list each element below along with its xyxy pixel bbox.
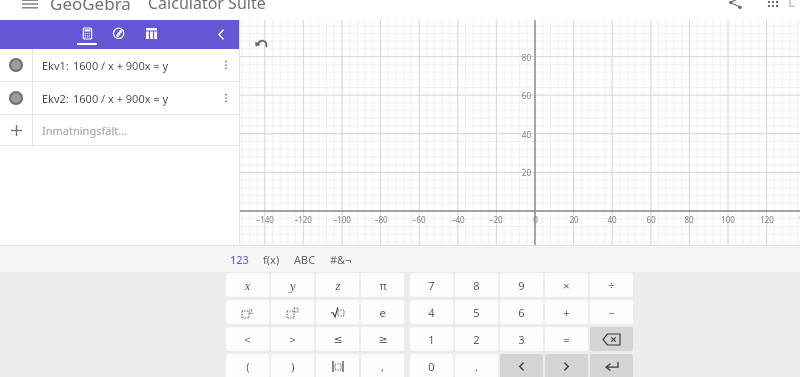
staticText: ≥ <box>378 333 388 346</box>
staticText: 6 <box>518 305 525 320</box>
button[interactable]: 1 <box>410 327 453 351</box>
button[interactable]: ÷ <box>590 273 633 297</box>
button[interactable]: ≥ <box>361 327 404 351</box>
button[interactable]: 9 <box>500 273 543 297</box>
button[interactable]: 7 <box>410 273 453 297</box>
staticText: 3 <box>518 332 525 347</box>
button[interactable]: #&¬ <box>330 246 352 272</box>
button[interactable]: Square <box>226 300 269 324</box>
button[interactable]: . <box>455 354 498 377</box>
staticText: ( <box>246 359 250 374</box>
button[interactable]: × <box>545 273 588 297</box>
button[interactable]: z <box>316 273 359 297</box>
button[interactable]: Menu <box>16 0 44 14</box>
button[interactable]: 5 <box>455 300 498 324</box>
staticText: − <box>608 305 615 320</box>
staticText: 4 <box>428 305 435 320</box>
staticText: 1 <box>428 332 435 347</box>
button[interactable]: Enter <box>590 354 633 377</box>
staticText: 140 <box>798 214 800 225</box>
staticText: #&¬ <box>330 252 352 267</box>
staticText: Inmatningsfält... <box>42 123 128 138</box>
button[interactable]: Apps <box>760 0 786 12</box>
button[interactable]: Tools <box>106 20 132 48</box>
button[interactable]: 0 <box>410 354 453 377</box>
button[interactable]: 2 <box>455 327 498 351</box>
button[interactable]: < <box>226 327 269 351</box>
button[interactable]: More options <box>216 49 236 81</box>
button[interactable]: Undo <box>250 32 272 54</box>
button[interactable]: ≤ <box>316 327 359 351</box>
staticText: 8 <box>473 278 480 293</box>
button[interactable]: f(x) <box>263 246 280 272</box>
button[interactable]: 123 <box>230 246 249 272</box>
staticText: –80 <box>374 214 388 225</box>
staticText: 0 <box>428 359 435 374</box>
button[interactable]: π <box>361 273 404 297</box>
staticText: 0 <box>533 214 538 225</box>
staticText: ) <box>291 359 295 374</box>
staticText: Ekv2: <box>42 91 69 106</box>
staticText: 7 <box>428 278 435 293</box>
staticText: 100 <box>721 214 735 225</box>
button[interactable]: y <box>271 273 314 297</box>
staticText: ≤ <box>333 333 343 346</box>
staticText: 40 <box>607 214 617 225</box>
staticText: 120 <box>760 214 774 225</box>
button[interactable]: Share <box>722 0 748 12</box>
staticText: –100 <box>333 214 351 225</box>
button[interactable]: e <box>361 300 404 324</box>
button[interactable]: = <box>545 327 588 351</box>
staticText: 60 <box>521 90 531 101</box>
staticText: z <box>335 278 341 293</box>
staticText: < <box>244 332 251 347</box>
button[interactable]: Calculator <box>74 20 100 48</box>
button[interactable]: Move right <box>545 354 588 377</box>
button[interactable]: ) <box>271 354 314 377</box>
button[interactable]: 8 <box>455 273 498 297</box>
staticText: –40 <box>451 214 465 225</box>
staticText: 2 <box>249 307 253 317</box>
button[interactable]: 4 <box>410 300 453 324</box>
button[interactable]: x <box>226 273 269 297</box>
button[interactable]: + <box>545 300 588 324</box>
button[interactable]: Square root <box>316 300 359 324</box>
staticText: 123 <box>230 252 249 267</box>
button[interactable]: 3 <box>500 327 543 351</box>
staticText: e <box>379 305 386 320</box>
button[interactable]: More options <box>216 82 236 114</box>
staticText: f(x) <box>263 252 280 267</box>
button[interactable]: − <box>590 300 633 324</box>
staticText: L <box>788 0 796 11</box>
staticText: 20 <box>521 167 531 178</box>
staticText: –20 <box>489 214 503 225</box>
button[interactable]: Table <box>138 20 164 48</box>
staticText: –140 <box>256 214 274 225</box>
staticText: 5 <box>473 305 480 320</box>
staticText: , <box>381 359 384 374</box>
staticText: –60 <box>412 214 426 225</box>
button[interactable]: ABC <box>294 246 316 272</box>
staticText: 2 <box>473 332 480 347</box>
staticText: 20 <box>569 214 579 225</box>
staticText: GeoGebra <box>50 0 131 12</box>
button[interactable]: > <box>271 327 314 351</box>
staticText: 80 <box>684 214 694 225</box>
staticText: y <box>290 278 296 293</box>
button[interactable]: Collapse panel <box>208 21 234 47</box>
button[interactable]: , <box>361 354 404 377</box>
button[interactable]: Move left <box>500 354 543 377</box>
button[interactable]: 6 <box>500 300 543 324</box>
button[interactable]: Inmatningsfält... <box>0 115 240 145</box>
button[interactable]: Ekv1: <box>0 49 240 81</box>
staticText: ÷ <box>608 278 615 293</box>
staticText: Ekv1: <box>42 58 69 73</box>
button[interactable]: Ekv2: <box>0 82 240 114</box>
button[interactable]: Power <box>271 300 314 324</box>
button[interactable]: Absolute value <box>316 354 359 377</box>
staticText: x <box>244 278 251 293</box>
staticText: 9 <box>518 278 525 293</box>
button[interactable]: ( <box>226 354 269 377</box>
staticText: > <box>289 332 296 347</box>
button[interactable]: Backspace <box>590 327 633 351</box>
